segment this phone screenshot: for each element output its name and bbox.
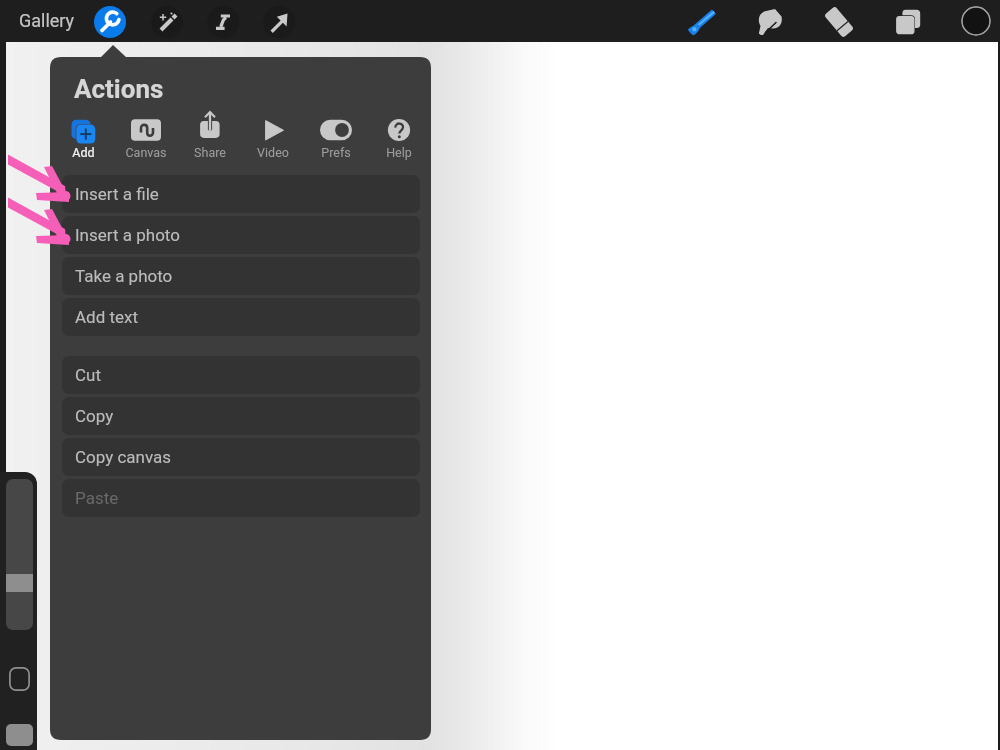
staticText: Share <box>194 145 226 160</box>
staticText: Video <box>257 145 289 160</box>
button[interactable]: Transform <box>263 6 295 38</box>
button[interactable]: Insert a file <box>62 175 420 213</box>
button[interactable]: Gallery <box>19 10 75 31</box>
staticText: Paste <box>75 488 119 508</box>
staticText: Insert a photo <box>75 225 180 245</box>
button[interactable]: Copy canvas <box>62 438 420 476</box>
button[interactable]: Paste <box>62 479 420 517</box>
button[interactable]: Adjustments <box>151 6 183 38</box>
button[interactable]: Video <box>243 116 303 161</box>
staticText: Copy canvas <box>75 447 172 467</box>
button[interactable]: Selection <box>207 6 239 38</box>
button[interactable]: Share <box>180 116 240 161</box>
staticText: Canvas <box>125 145 167 160</box>
button[interactable]: Help <box>369 116 429 161</box>
button[interactable]: Copy <box>62 397 420 435</box>
button[interactable]: Brush size <box>6 479 33 630</box>
staticText: Prefs <box>321 145 351 160</box>
button[interactable]: Add text <box>62 298 420 336</box>
button[interactable]: Opacity <box>6 724 33 746</box>
button[interactable]: Smudge <box>754 6 786 38</box>
button[interactable]: Actions <box>94 6 126 38</box>
button[interactable]: Erase <box>823 6 855 38</box>
staticText: Insert a file <box>75 184 159 204</box>
button[interactable]: Layers <box>892 6 924 38</box>
staticText: Cut <box>75 365 101 385</box>
button[interactable]: Canvas <box>116 116 176 161</box>
button[interactable]: Cut <box>62 356 420 394</box>
staticText: Add text <box>75 307 139 327</box>
button[interactable]: Insert a photo <box>62 216 420 254</box>
staticText: Add <box>72 145 95 160</box>
staticText: Actions <box>74 74 164 104</box>
button[interactable]: Add <box>53 116 113 161</box>
button[interactable]: Take a photo <box>62 257 420 295</box>
staticText: Copy <box>75 406 114 426</box>
button[interactable]: Modify <box>9 667 30 691</box>
button[interactable]: Colour <box>961 6 991 36</box>
staticText: Take a photo <box>75 266 173 286</box>
button[interactable]: Paint <box>686 6 718 38</box>
button[interactable]: Prefs <box>306 116 366 161</box>
staticText: Help <box>386 145 412 160</box>
